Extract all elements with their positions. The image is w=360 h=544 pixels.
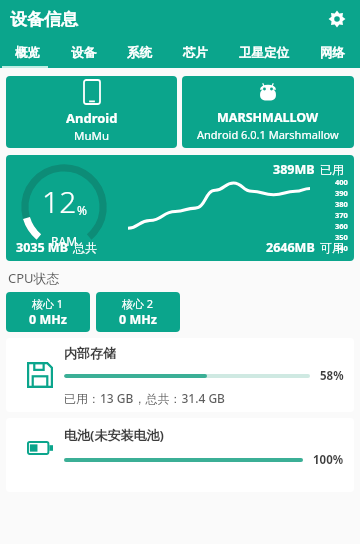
staticText: 设备: [71, 45, 96, 61]
staticText: 核心 2: [122, 296, 154, 311]
button[interactable]: Android: [6, 76, 177, 148]
staticText: 0 MHz: [119, 311, 157, 328]
button[interactable]: 12: [6, 155, 354, 261]
staticText: 12: [42, 181, 77, 222]
button[interactable]: 概览: [0, 38, 55, 68]
staticText: 电池(未安装电池): [64, 426, 164, 444]
button[interactable]: 芯片: [167, 38, 223, 68]
staticText: RAM: [51, 233, 78, 249]
staticText: 内部存储: [64, 345, 116, 361]
staticText: CPU状态: [8, 269, 60, 287]
staticText: MARSHMALLOW: [217, 109, 319, 126]
staticText: 3035 MB: [16, 239, 68, 256]
staticText: 58%: [320, 368, 344, 384]
button[interactable]: 核心 2: [96, 292, 180, 332]
button[interactable]: 卫星定位: [223, 38, 304, 68]
staticText: 设备信息: [10, 9, 78, 30]
staticText: 350: [335, 232, 348, 242]
staticText: 已用：13 GB，总共：31.4 GB: [64, 390, 225, 406]
staticText: 360: [335, 221, 348, 231]
staticText: Android: [66, 109, 118, 127]
staticText: 2646MB: [266, 239, 315, 256]
staticText: %: [77, 202, 87, 218]
staticText: 卫星定位: [239, 45, 289, 61]
button[interactable]: 系统: [111, 38, 167, 68]
staticText: MuMu: [74, 128, 110, 144]
staticText: 概览: [15, 45, 40, 61]
staticText: 100%: [313, 452, 344, 468]
staticText: 已用: [320, 162, 344, 177]
button[interactable]: Settings: [320, 2, 354, 36]
button[interactable]: 设备: [55, 38, 111, 68]
button[interactable]: 内部存储: [6, 338, 354, 412]
staticText: 400: [335, 177, 348, 187]
staticText: 340: [335, 243, 348, 253]
staticText: 芯片: [183, 45, 208, 61]
button[interactable]: 核心 1: [6, 292, 90, 332]
staticText: Android 6.0.1 Marshmallow: [197, 127, 339, 142]
staticText: 总共: [73, 240, 97, 255]
staticText: 系统: [127, 45, 152, 61]
staticText: 389MB: [273, 161, 315, 178]
staticText: 0 MHz: [29, 311, 67, 328]
button[interactable]: 电池(未安装电池): [6, 418, 354, 492]
staticText: 可用: [320, 240, 344, 255]
staticText: 380: [335, 199, 348, 209]
staticText: 390: [335, 188, 348, 198]
button[interactable]: 网络: [304, 38, 360, 68]
staticText: 核心 1: [32, 296, 64, 311]
staticText: 网络: [320, 45, 345, 61]
staticText: 370: [335, 210, 348, 220]
button[interactable]: MARSHMALLOW: [182, 76, 354, 148]
